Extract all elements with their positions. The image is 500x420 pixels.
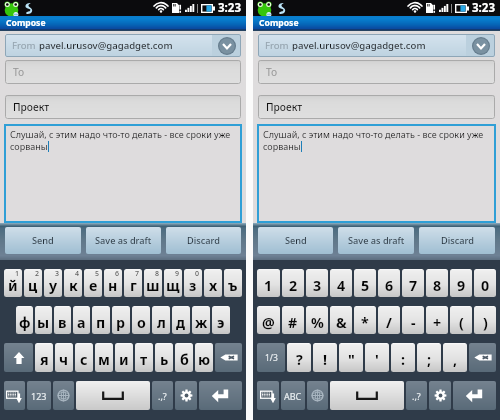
- button[interactable]: ы: [35, 306, 52, 334]
- button[interactable]: о: [132, 306, 150, 334]
- button[interactable]: ?: [287, 343, 311, 372]
- button[interactable]: ь: [155, 343, 173, 372]
- button[interactable]: Слушай, с этим надо что-то делать - все …: [6, 126, 240, 221]
- button[interactable]: Shift: [4, 343, 33, 372]
- staticText: 3:23: [218, 0, 241, 16]
- button[interactable]: ): [474, 306, 496, 334]
- button[interactable]: я: [35, 343, 53, 372]
- button[interactable]: Hide keyboard: [257, 381, 279, 410]
- button[interactable]: Send: [258, 227, 333, 254]
- button[interactable]: To: [258, 60, 495, 84]
- button[interactable]: Hide keyboard: [4, 381, 25, 410]
- button[interactable]: ': [365, 343, 389, 372]
- button[interactable]: To: [5, 60, 241, 84]
- button[interactable]: в: [54, 306, 71, 334]
- button[interactable]: с: [75, 343, 93, 372]
- button[interactable]: р: [112, 306, 130, 334]
- button[interactable]: Backspace: [215, 343, 242, 372]
- button[interactable]: 5: [354, 269, 376, 297]
- button[interactable]: Send: [5, 227, 81, 254]
- button[interactable]: з: [184, 269, 202, 297]
- staticText: 7: [409, 276, 418, 295]
- button[interactable]: *: [354, 306, 376, 334]
- button[interactable]: ч: [55, 343, 73, 372]
- button[interactable]: ш: [144, 269, 162, 297]
- button[interactable]: .,?: [406, 381, 427, 410]
- button[interactable]: /: [378, 306, 400, 334]
- button[interactable]: Save as draft: [338, 227, 414, 254]
- button[interactable]: Settings: [429, 381, 451, 410]
- button[interactable]: 6: [378, 269, 400, 297]
- button[interactable]: &: [330, 306, 352, 334]
- button[interactable]: Проект: [258, 95, 495, 119]
- button[interactable]: л: [152, 306, 170, 334]
- button[interactable]: ": [339, 343, 363, 372]
- button[interactable]: 9: [450, 269, 472, 297]
- button[interactable]: Space: [76, 381, 150, 410]
- button[interactable]: 7: [402, 269, 424, 297]
- button[interactable]: б: [175, 343, 193, 372]
- button[interactable]: д: [172, 306, 190, 334]
- button[interactable]: Слушай, с этим надо что-то делать - все …: [259, 126, 494, 221]
- button[interactable]: т: [135, 343, 153, 372]
- button[interactable]: 4: [330, 269, 352, 297]
- button[interactable]: ABC: [281, 381, 305, 410]
- button[interactable]: Space: [330, 381, 404, 410]
- button[interactable]: п: [92, 306, 110, 334]
- button[interactable]: !: [313, 343, 337, 372]
- button[interactable]: From: [258, 34, 495, 57]
- button[interactable]: Backspace: [469, 343, 496, 372]
- button[interactable]: к: [64, 269, 82, 297]
- button[interactable]: 0: [474, 269, 496, 297]
- button[interactable]: Change language: [53, 381, 74, 410]
- button[interactable]: 1: [257, 269, 280, 297]
- button[interactable]: е: [84, 269, 102, 297]
- button[interactable]: @: [257, 306, 280, 334]
- button[interactable]: э: [212, 306, 230, 334]
- button[interactable]: ц: [24, 269, 42, 297]
- button[interactable]: ф: [16, 306, 33, 334]
- button[interactable]: Save as draft: [86, 227, 161, 254]
- staticText: б: [180, 350, 189, 369]
- button[interactable]: ;: [417, 343, 441, 372]
- button[interactable]: г: [124, 269, 142, 297]
- button[interactable]: (: [450, 306, 472, 334]
- button[interactable]: Show recipients: [212, 34, 241, 57]
- button[interactable]: Enter: [199, 381, 242, 410]
- staticText: й: [8, 276, 18, 295]
- button[interactable]: From: [5, 34, 241, 57]
- button[interactable]: у: [44, 269, 62, 297]
- button[interactable]: .,?: [152, 381, 173, 410]
- button[interactable]: Settings: [175, 381, 197, 410]
- staticText: -: [411, 313, 416, 332]
- button[interactable]: #: [282, 306, 304, 334]
- button[interactable]: щ: [164, 269, 182, 297]
- button[interactable]: 2: [282, 269, 304, 297]
- button[interactable]: ж: [192, 306, 210, 334]
- button[interactable]: %: [306, 306, 328, 334]
- button[interactable]: Show recipients: [466, 34, 495, 57]
- button[interactable]: а: [73, 306, 90, 334]
- button[interactable]: 8: [426, 269, 448, 297]
- button[interactable]: 1/3: [257, 343, 285, 372]
- button[interactable]: ю: [195, 343, 213, 372]
- button[interactable]: -: [402, 306, 424, 334]
- button[interactable]: ,: [443, 343, 467, 372]
- button[interactable]: 123: [27, 381, 51, 410]
- button[interactable]: Проект: [5, 95, 241, 119]
- button[interactable]: Change language: [307, 381, 328, 410]
- staticText: 8: [433, 276, 442, 295]
- button[interactable]: ъ: [224, 269, 242, 297]
- button[interactable]: +: [426, 306, 448, 334]
- button[interactable]: х: [204, 269, 222, 297]
- button[interactable]: и: [115, 343, 133, 372]
- staticText: 2: [35, 269, 40, 279]
- button[interactable]: :: [391, 343, 415, 372]
- button[interactable]: 3: [306, 269, 328, 297]
- button[interactable]: Discard: [166, 227, 241, 254]
- button[interactable]: й: [4, 269, 22, 297]
- button[interactable]: м: [95, 343, 113, 372]
- button[interactable]: Discard: [419, 227, 495, 254]
- button[interactable]: Enter: [453, 381, 496, 410]
- button[interactable]: н: [104, 269, 122, 297]
